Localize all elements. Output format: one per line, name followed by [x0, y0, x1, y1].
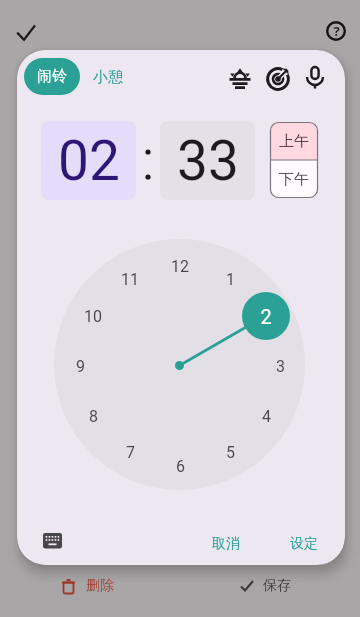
button[interactable]: 5	[216, 438, 244, 466]
button[interactable]: 12	[166, 252, 194, 280]
staticText: 6	[176, 457, 185, 476]
staticText: 12	[171, 257, 189, 276]
button[interactable]: 11	[116, 265, 144, 293]
button[interactable]: 9	[66, 352, 94, 380]
button[interactable]	[16, 24, 36, 44]
button[interactable]: ?	[326, 21, 346, 41]
staticText: 4	[262, 407, 271, 426]
button[interactable]	[43, 533, 62, 549]
button[interactable]	[266, 67, 290, 91]
staticText: 9	[76, 357, 85, 376]
button[interactable]: 下午	[270, 160, 318, 198]
button[interactable]: 删除	[58, 572, 128, 600]
button[interactable]: 取消	[199, 528, 253, 560]
button[interactable]: 1	[216, 265, 244, 293]
staticText: 5	[226, 443, 235, 462]
button[interactable]: 小憩	[84, 59, 132, 95]
staticText: 1	[226, 270, 235, 289]
button[interactable]: 6	[166, 452, 194, 480]
staticText: 33	[177, 129, 239, 193]
button[interactable]: 10	[79, 302, 107, 330]
staticText: 设定	[290, 535, 318, 553]
button[interactable]: 设定	[277, 528, 331, 560]
staticText: 10	[84, 307, 102, 326]
button[interactable]: 02	[41, 121, 136, 200]
button[interactable]: 3	[266, 352, 294, 380]
staticText: 保存	[263, 577, 291, 595]
staticText: 02	[58, 129, 120, 193]
staticText: 取消	[212, 535, 240, 553]
button[interactable]: 8	[79, 402, 107, 430]
button[interactable]	[303, 65, 327, 89]
button[interactable]: 2	[242, 292, 290, 340]
button[interactable]: 保存	[238, 572, 300, 600]
staticText: 上午	[279, 132, 309, 151]
staticText: 下午	[279, 170, 309, 189]
staticText: 11	[121, 270, 139, 289]
staticText: 8	[89, 407, 98, 426]
staticText: 2	[260, 305, 272, 328]
button[interactable]: 33	[160, 121, 255, 200]
button[interactable]: 7	[116, 438, 144, 466]
staticText: 小憩	[93, 68, 123, 87]
staticText: 7	[126, 443, 135, 462]
staticText: ?	[333, 22, 340, 40]
staticText: 3	[276, 357, 285, 376]
button[interactable]: 4	[252, 402, 280, 430]
button[interactable]: 上午	[270, 122, 318, 160]
staticText: 闹铃	[37, 67, 67, 86]
button[interactable]	[228, 66, 252, 90]
staticText: 删除	[86, 577, 114, 595]
button[interactable]: 闹铃	[24, 58, 80, 95]
